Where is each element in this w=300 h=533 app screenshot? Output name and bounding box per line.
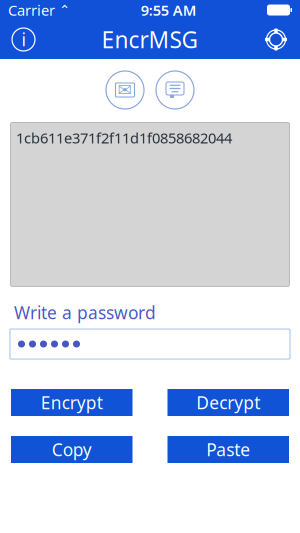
button[interactable]: Paste [167, 436, 289, 463]
button[interactable]: Encrypt [11, 389, 132, 416]
button[interactable]: Copy [11, 436, 132, 463]
staticText: ✉ [117, 80, 132, 100]
button[interactable]: Decrypt [167, 389, 289, 416]
staticText: Encrypt [41, 391, 103, 414]
staticText: Decrypt [196, 391, 260, 414]
button[interactable]: Message [156, 71, 194, 109]
button[interactable]: Info [0, 20, 47, 59]
staticText: 1cb611e371f2f11d1f0858682044 [16, 128, 232, 147]
staticText: Write a password [14, 301, 156, 324]
staticText: Paste [206, 438, 250, 461]
staticText: 9:55 AM [141, 0, 197, 20]
staticText: i [21, 28, 25, 51]
button[interactable]: Settings [252, 19, 300, 59]
staticText: EncrMSG [101, 24, 198, 54]
staticText: ⌃ [55, 2, 70, 17]
staticText: Carrier [8, 0, 55, 20]
staticText: Copy [52, 438, 92, 461]
button[interactable]: Mail [106, 71, 144, 109]
